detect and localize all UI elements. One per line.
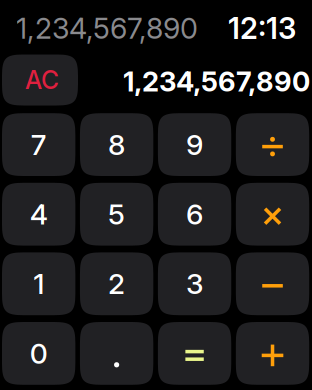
staticText: 5 [108, 197, 125, 231]
staticText: 8 [108, 127, 125, 162]
button[interactable]: Add [236, 322, 309, 385]
staticText: 1,234,567,890 [16, 11, 198, 46]
button[interactable]: 0 [2, 322, 75, 385]
button[interactable]: Subtract [236, 252, 309, 315]
button[interactable]: 7 [2, 113, 75, 176]
staticText: 7 [31, 127, 47, 162]
staticText: 6 [186, 197, 203, 231]
button[interactable]: Divide [236, 113, 309, 176]
staticText: AC [25, 65, 59, 95]
button[interactable]: 1 [2, 252, 75, 315]
button[interactable]: Decimal point [80, 322, 153, 385]
staticText: 9 [186, 127, 203, 162]
staticText: 2 [108, 267, 125, 301]
button[interactable]: 9 [158, 113, 231, 176]
button[interactable]: AC [2, 54, 78, 105]
staticText: 3 [186, 267, 203, 301]
staticText: 1 [33, 267, 44, 301]
button[interactable]: 3 [158, 252, 231, 315]
button[interactable]: 8 [80, 113, 153, 176]
button[interactable]: 4 [2, 183, 75, 246]
staticText: 12:13 [228, 10, 296, 46]
staticText: 4 [30, 197, 48, 231]
button[interactable]: Multiply [236, 183, 309, 246]
button[interactable]: 2 [80, 252, 153, 315]
staticText: 1,234,567,890 [123, 65, 310, 98]
button[interactable]: 6 [158, 183, 231, 246]
staticText: 0 [30, 336, 48, 370]
button[interactable]: 5 [80, 183, 153, 246]
button[interactable]: Equals [158, 322, 231, 385]
